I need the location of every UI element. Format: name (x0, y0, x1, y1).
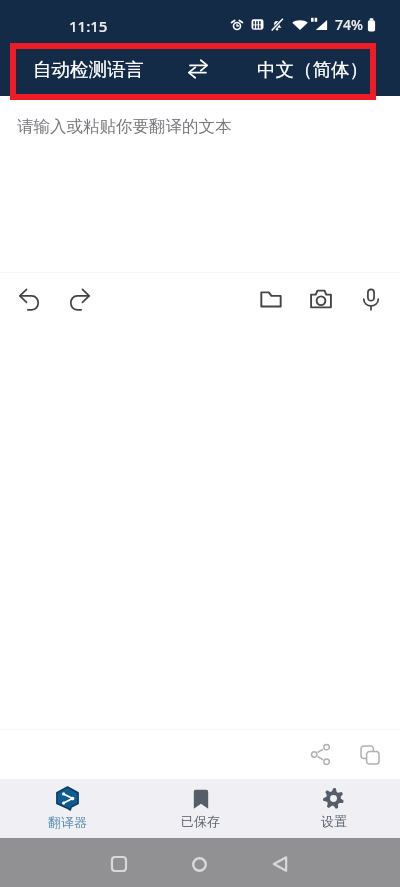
staticText: 请输入或粘贴你要翻译的文本 (17, 116, 232, 137)
staticText: 已保存 (181, 813, 220, 829)
button[interactable]: Voice input (346, 274, 396, 324)
button[interactable]: Redo (54, 274, 104, 324)
button[interactable]: 请输入或粘贴你要翻译的文本 (0, 96, 400, 272)
button[interactable]: Home (177, 842, 221, 886)
button[interactable]: Share (296, 730, 345, 779)
button[interactable]: Camera (296, 274, 346, 324)
button[interactable]: Recents (97, 842, 141, 886)
button[interactable]: Import file (246, 274, 296, 324)
button[interactable]: Undo (4, 274, 54, 324)
staticText: 中文（简体） (257, 58, 368, 81)
button[interactable]: 自动检测语言 (0, 42, 175, 96)
button[interactable]: 翻译器 (0, 779, 134, 838)
staticText: 11:15 (69, 16, 108, 36)
button[interactable]: 设置 (267, 779, 400, 838)
staticText: 设置 (321, 813, 347, 829)
button[interactable]: 中文（简体） (221, 42, 400, 96)
button[interactable]: Swap languages (175, 42, 221, 96)
staticText: 自动检测语言 (33, 58, 144, 81)
staticText: 翻译器 (48, 814, 87, 830)
staticText: 74% (335, 15, 363, 34)
button[interactable]: Copy (345, 730, 394, 779)
button[interactable]: 已保存 (134, 779, 267, 838)
button[interactable]: Back (258, 842, 302, 886)
